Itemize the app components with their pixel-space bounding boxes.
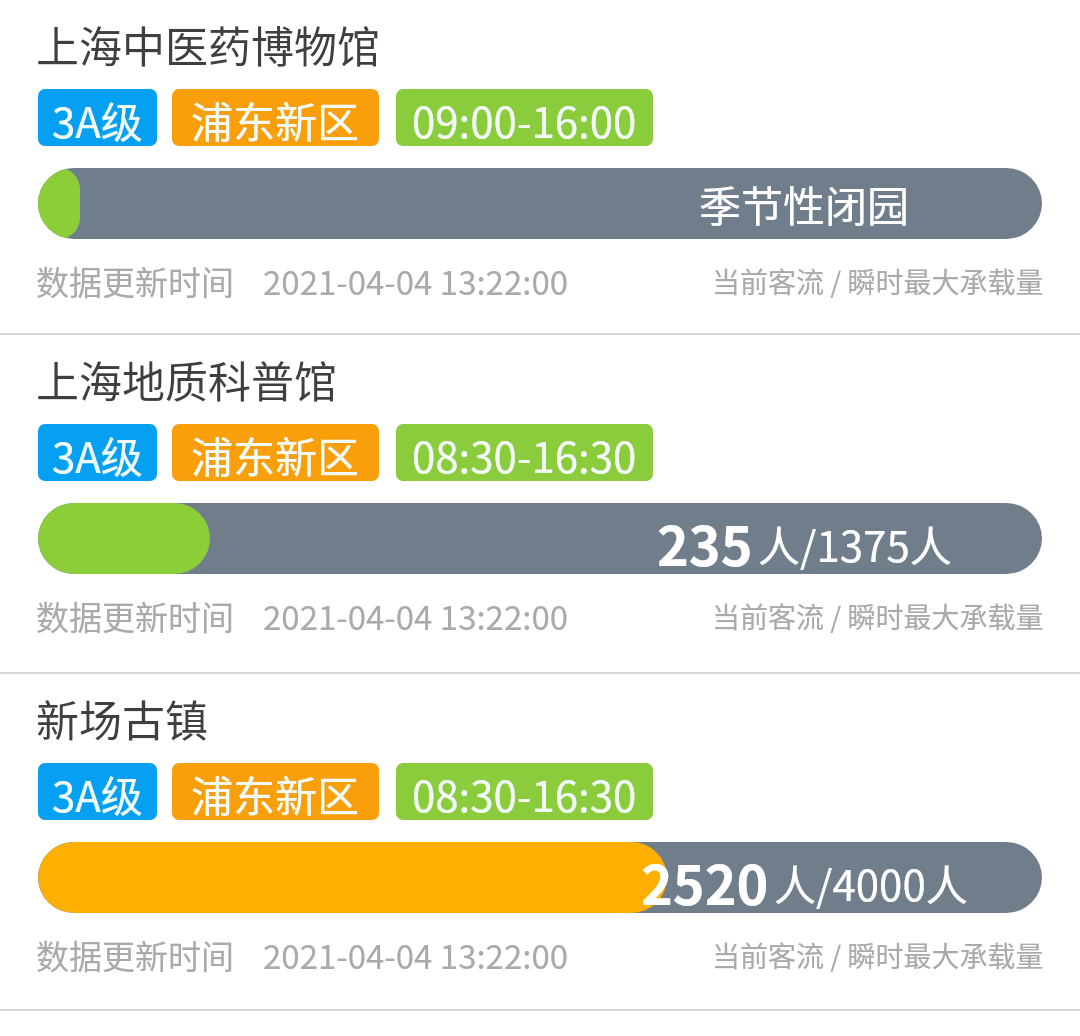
- staticText: 上海中医药博物馆: [36, 13, 380, 75]
- staticText: 人/1375人: [758, 513, 952, 574]
- button[interactable]: 09:00-16:00: [396, 89, 653, 146]
- other: Live occupancy: [38, 168, 1042, 239]
- button[interactable]: 上海中医药博物馆: [0, 0, 1080, 335]
- staticText: 上海地质科普馆: [36, 348, 337, 410]
- staticText: 浦东新区: [191, 424, 360, 481]
- staticText: 3A级: [52, 89, 143, 146]
- other: Live occupancy: [38, 503, 1042, 574]
- staticText: 浦东新区: [191, 763, 360, 820]
- button[interactable]: 浦东新区: [172, 89, 379, 146]
- staticText: 08:30-16:30: [412, 424, 637, 481]
- staticText: 2520: [641, 842, 769, 913]
- staticText: 当前客流 / 瞬时最大承载量: [712, 935, 1044, 976]
- staticText: 当前客流 / 瞬时最大承载量: [712, 261, 1044, 302]
- button[interactable]: 浦东新区: [172, 424, 379, 481]
- staticText: 3A级: [52, 424, 143, 481]
- staticText: 季节性闭园: [699, 173, 910, 234]
- staticText: 浦东新区: [191, 89, 360, 146]
- staticText: 新场古镇: [36, 687, 208, 749]
- other: Live occupancy: [38, 842, 1042, 913]
- button[interactable]: 上海地质科普馆: [0, 335, 1080, 674]
- staticText: 2021-04-04 13:22:00: [263, 592, 569, 640]
- button[interactable]: 浦东新区: [172, 763, 379, 820]
- staticText: 数据更新时间: [36, 592, 234, 640]
- staticText: 2021-04-04 13:22:00: [263, 931, 569, 979]
- button[interactable]: 3A级: [38, 424, 157, 481]
- staticText: 3A级: [52, 763, 143, 820]
- button[interactable]: 08:30-16:30: [396, 424, 653, 481]
- staticText: 数据更新时间: [36, 257, 234, 305]
- staticText: 人/4000人: [774, 852, 968, 913]
- staticText: 当前客流 / 瞬时最大承载量: [712, 596, 1044, 637]
- button[interactable]: 3A级: [38, 763, 157, 820]
- button[interactable]: 新场古镇: [0, 674, 1080, 1011]
- staticText: 2021-04-04 13:22:00: [263, 257, 569, 305]
- staticText: 09:00-16:00: [412, 89, 637, 146]
- button[interactable]: 08:30-16:30: [396, 763, 653, 820]
- staticText: 数据更新时间: [36, 931, 234, 979]
- staticText: 235: [657, 503, 753, 574]
- staticText: 08:30-16:30: [412, 763, 637, 820]
- button[interactable]: 3A级: [38, 89, 157, 146]
